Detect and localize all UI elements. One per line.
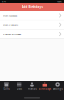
button[interactable]: Gifts [0,82,13,91]
staticText: Custom Birthday [3,32,21,36]
staticText: Add Birthdays [21,5,42,9]
staticText: Lists [17,87,22,91]
button[interactable]: Lists [13,82,26,91]
button[interactable]: From Facebook [0,11,64,20]
staticText: 9:41 [2,0,6,3]
staticText: From Contacts [3,23,18,26]
staticText: 100% [57,0,62,3]
button[interactable]: Settings [51,82,64,91]
staticText: Birthdays [39,87,51,91]
staticText: Friends [27,87,36,91]
button[interactable]: Birthdays [38,82,51,91]
button[interactable]: Friends [26,82,38,91]
staticText: Settings [53,87,63,91]
button[interactable]: From Contacts [0,20,64,30]
button[interactable]: Custom Birthday [0,30,64,39]
staticText: Gifts [3,87,9,91]
staticText: From Facebook [3,14,17,17]
